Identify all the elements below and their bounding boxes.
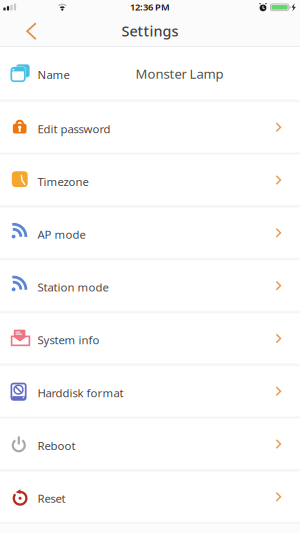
staticText: Harddisk format [37,385,123,400]
staticText: Name [37,67,69,82]
staticText: Station mode [37,280,108,294]
staticText: 12:36 PM [130,1,170,13]
button[interactable]: Reset [0,472,300,522]
staticText: Monster Lamp [135,65,223,82]
staticText: Reboot [37,438,75,453]
button[interactable]: Back [0,16,44,46]
staticText: Reset [37,491,65,506]
button[interactable]: AP mode [0,208,300,258]
staticText: System info [37,333,99,347]
staticText: Timezone [37,174,88,189]
button[interactable]: Edit password [0,102,300,152]
button[interactable]: Name [0,47,300,99]
staticText: Settings [121,22,178,40]
button[interactable]: System info [0,314,300,363]
staticText: AP mode [37,227,85,242]
button[interactable]: Reboot [0,419,300,469]
button[interactable]: Timezone [0,155,300,205]
staticText: Edit password [37,121,110,136]
button[interactable]: Station mode [0,261,300,310]
button[interactable]: Harddisk format [0,366,300,416]
